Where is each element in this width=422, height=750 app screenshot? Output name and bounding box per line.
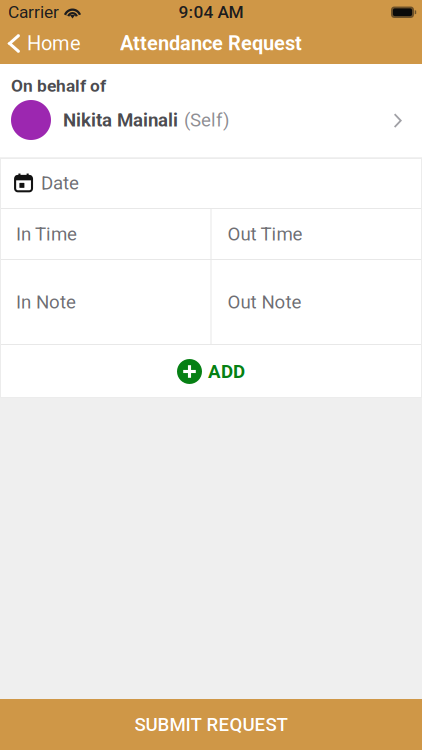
button[interactable]: Out Time bbox=[211, 209, 422, 259]
button[interactable]: SUBMIT REQUEST bbox=[0, 699, 422, 750]
staticText: Nikita Mainali bbox=[63, 109, 178, 131]
staticText: Home bbox=[27, 32, 81, 55]
button[interactable]: ADD bbox=[0, 345, 422, 398]
staticText: Attendance Request bbox=[120, 32, 302, 55]
staticText: ADD bbox=[208, 361, 245, 382]
staticText: Out Note bbox=[227, 291, 301, 313]
button[interactable]: In Time bbox=[0, 209, 210, 259]
staticText: On behalf of bbox=[11, 76, 106, 96]
button[interactable]: Out Note bbox=[211, 260, 422, 344]
button[interactable]: Nikita Mainali bbox=[0, 96, 422, 144]
staticText: 9:04 AM bbox=[178, 2, 243, 22]
staticText: In Note bbox=[16, 291, 76, 313]
button[interactable]: In Note bbox=[0, 260, 210, 344]
staticText: SUBMIT REQUEST bbox=[134, 714, 287, 735]
staticText: In Time bbox=[16, 223, 77, 245]
staticText: Date bbox=[41, 172, 79, 194]
button[interactable]: Date bbox=[0, 158, 422, 208]
staticText: Out Time bbox=[227, 223, 302, 245]
button[interactable]: Home bbox=[0, 23, 91, 63]
staticText: (Self) bbox=[184, 109, 229, 131]
staticText: Carrier bbox=[8, 2, 59, 22]
